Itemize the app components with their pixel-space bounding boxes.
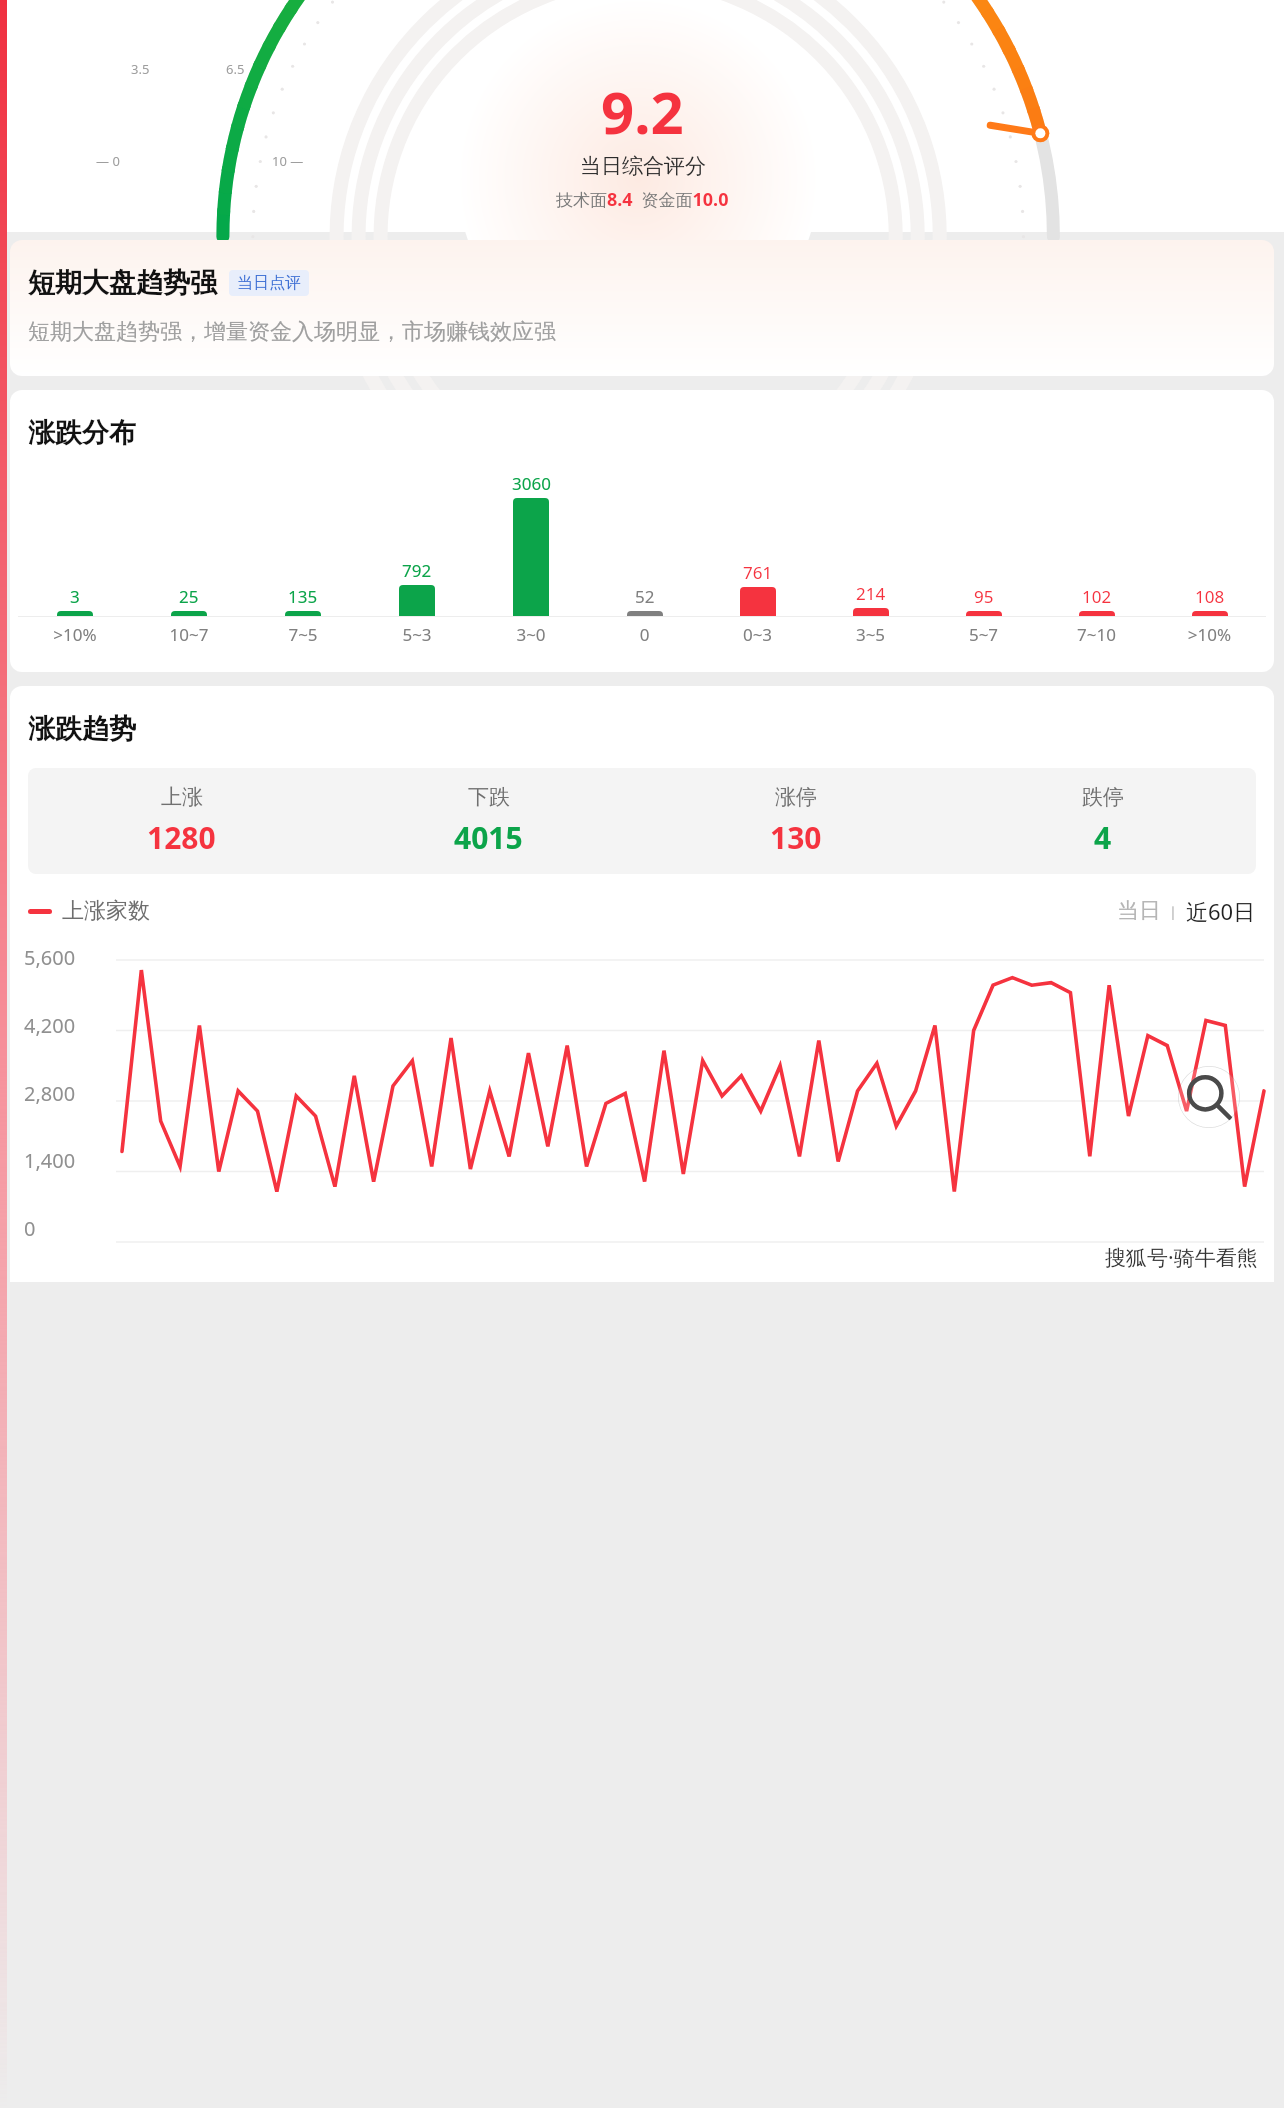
staticText: 4,200 <box>24 1012 76 1039</box>
button[interactable]: 下跌 <box>335 784 642 858</box>
staticText: 上涨 <box>161 784 203 810</box>
staticText: 下跌 <box>468 784 510 810</box>
staticText: 5,600 <box>24 944 76 971</box>
staticText: 短期大盘趋势强，增量资金入场明显，市场赚钱效应强 <box>28 318 556 346</box>
staticText: 3~5 <box>814 623 927 646</box>
staticText: 4015 <box>454 817 523 858</box>
button[interactable]: 上涨 <box>28 784 335 858</box>
staticText: 6.5 <box>226 60 245 78</box>
button[interactable]: 涨停 <box>642 784 949 858</box>
staticText: 7~5 <box>246 623 360 646</box>
staticText: 761 <box>743 561 773 584</box>
button[interactable]: 近60日 <box>1186 896 1256 926</box>
staticText: 当日综合评分 <box>580 153 706 179</box>
staticText: >10% <box>18 623 132 646</box>
staticText: 近60日 <box>1186 896 1256 926</box>
staticText: 涨跌趋势 <box>28 712 136 746</box>
staticText: 4 <box>1094 817 1112 858</box>
button[interactable]: Zoom chart <box>1178 1066 1240 1128</box>
staticText: 5~7 <box>927 623 1040 646</box>
staticText: 当日 <box>1117 897 1161 925</box>
staticText: 3 <box>70 585 80 608</box>
staticText: 短期大盘趋势强 <box>28 266 217 300</box>
staticText: 1280 <box>147 817 216 858</box>
staticText: 9.2 <box>601 72 684 151</box>
staticText: 1,400 <box>24 1147 76 1174</box>
staticText: 涨停 <box>775 784 817 810</box>
staticText: 52 <box>635 585 655 608</box>
staticText: 5~3 <box>360 623 474 646</box>
staticText: 7~10 <box>1040 623 1153 646</box>
staticText: 搜狐号·骑牛看熊 <box>1105 1243 1258 1272</box>
staticText: 当日点评 <box>237 273 301 293</box>
button[interactable]: 当日 <box>1117 897 1161 925</box>
staticText: 108 <box>1195 585 1225 608</box>
staticText: 214 <box>856 582 886 605</box>
staticText: 10 — <box>272 152 304 170</box>
staticText: >10% <box>1153 623 1266 646</box>
staticText: 95 <box>974 585 994 608</box>
button[interactable]: 跌停 <box>949 784 1256 858</box>
staticText: 3.5 <box>131 60 150 78</box>
staticText: 3~0 <box>474 623 588 646</box>
staticText: 130 <box>770 817 822 858</box>
staticText: 25 <box>179 585 199 608</box>
staticText: ׀ <box>1161 899 1186 924</box>
staticText: 涨跌分布 <box>28 416 136 450</box>
staticText: 135 <box>288 585 318 608</box>
staticText: — 0 <box>96 152 120 170</box>
staticText: 技术面8.4 资金面10.0 <box>556 187 729 212</box>
staticText: 102 <box>1082 585 1112 608</box>
staticText: 上涨家数 <box>62 897 150 925</box>
staticText: 0 <box>24 1215 36 1242</box>
staticText: 2,800 <box>24 1080 76 1107</box>
staticText: 3060 <box>512 472 551 495</box>
staticText: 跌停 <box>1082 784 1124 810</box>
staticText: 0 <box>588 623 701 646</box>
staticText: 10~7 <box>132 623 246 646</box>
button[interactable]: 短期大盘趋势强 <box>10 240 1274 376</box>
staticText: 0~3 <box>701 623 814 646</box>
staticText: 792 <box>402 559 432 582</box>
